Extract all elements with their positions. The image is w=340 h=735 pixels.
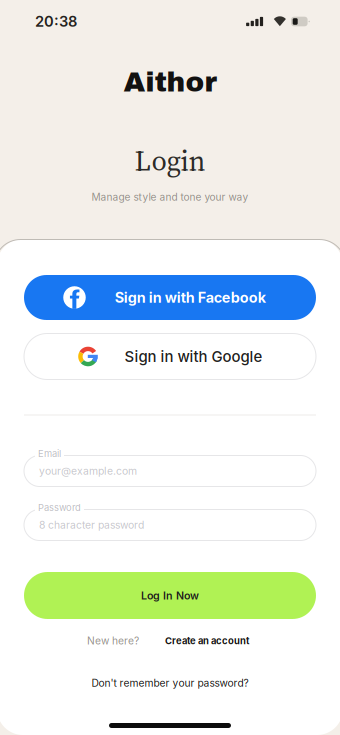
staticText: Manage style and tone your way [91, 191, 248, 203]
staticText: Aithor [123, 67, 216, 97]
button[interactable]: Sign in with Facebook [24, 275, 316, 320]
staticText: Login [134, 141, 205, 180]
staticText: Create an account [165, 635, 249, 646]
button[interactable]: Sign in with Google [24, 333, 316, 379]
staticText: 8 character password [39, 519, 144, 531]
staticText: Email [38, 448, 61, 459]
button[interactable]: Create an account [139, 635, 249, 646]
button[interactable]: Log In Now [24, 572, 316, 619]
staticText: New here? [87, 634, 139, 647]
button[interactable]: 8 character password [24, 509, 316, 540]
staticText: your@example.com [39, 465, 137, 477]
staticText: Sign in with Google [124, 347, 262, 366]
button[interactable]: your@example.com [24, 455, 316, 486]
staticText: Sign in with Facebook [115, 289, 266, 306]
button[interactable]: Don't remember your password? [91, 677, 248, 689]
staticText: Password [38, 502, 81, 513]
staticText: 20:38 [35, 13, 77, 30]
staticText: Don't remember your password? [91, 677, 248, 689]
staticText: Log In Now [141, 589, 199, 602]
